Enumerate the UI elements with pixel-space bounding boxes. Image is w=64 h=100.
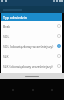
button[interactable]: Back (3, 89, 23, 91)
button[interactable]: SOL (obowiązkowy wcześniejszy) (1, 41, 62, 51)
staticText: SLK (3, 54, 56, 58)
button[interactable]: Brak (1, 21, 62, 31)
staticText: SOL (3, 34, 56, 38)
button[interactable]: Recent apps (42, 89, 61, 91)
staticText: Typ odwiedzin (3, 15, 27, 20)
staticText: SOL (obowiązkowy wcześniejszy) (3, 44, 56, 48)
staticText: Brak (3, 24, 56, 28)
staticText: SLK (obowiązkowy wcześniejszy) (3, 64, 56, 68)
button[interactable]: SLK (obowiązkowy wcześniejszy) (1, 61, 62, 71)
button[interactable]: Home (23, 89, 42, 91)
button[interactable]: SOL (1, 31, 62, 41)
button[interactable]: SLK (1, 51, 62, 61)
